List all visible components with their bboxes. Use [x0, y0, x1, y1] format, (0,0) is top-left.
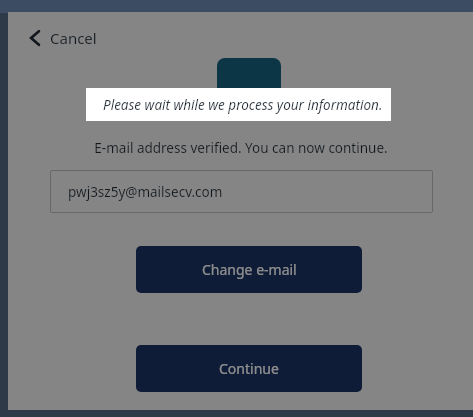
button[interactable]: Please wait while we process your inform…: [86, 88, 391, 121]
staticText: Please wait while we process your inform…: [103, 96, 383, 114]
staticText: E-mail address verified. You can now con…: [94, 139, 388, 157]
button[interactable]: Continue: [136, 345, 362, 392]
staticText: pwj3sz5y@mailsecv.com: [68, 183, 223, 201]
staticText: Cancel: [50, 28, 97, 48]
staticText: Change e-mail: [202, 260, 297, 279]
staticText: Continue: [219, 359, 279, 378]
button[interactable]: pwj3sz5y@mailsecv.com: [50, 170, 433, 213]
button[interactable]: Change e-mail: [136, 246, 362, 293]
button[interactable]: Cancel: [24, 24, 101, 52]
